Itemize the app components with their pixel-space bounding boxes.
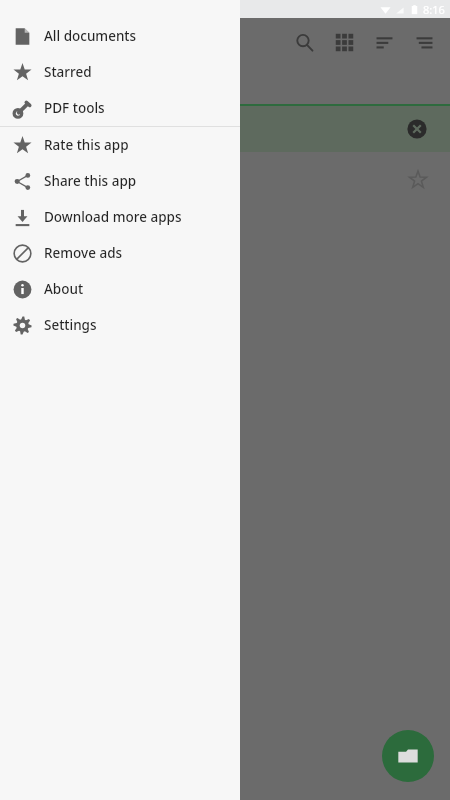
button[interactable]: Device storage xyxy=(203,66,247,106)
button[interactable]: Settings xyxy=(0,307,240,343)
staticText: Download more apps xyxy=(44,208,182,226)
button[interactable]: Download more apps xyxy=(0,199,240,235)
button[interactable]: Starred xyxy=(0,54,240,90)
button[interactable]: PDF tools xyxy=(0,90,240,126)
staticText: Starred xyxy=(44,63,92,81)
staticText: dia_medianoche.pdf xyxy=(14,170,153,190)
staticText: All documents xyxy=(44,27,137,45)
button[interactable]: New folder xyxy=(382,730,434,782)
button[interactable]: About xyxy=(0,271,240,307)
button[interactable]: Star xyxy=(400,162,436,198)
button[interactable]: Search xyxy=(284,22,324,62)
button[interactable]: Remove ads xyxy=(0,235,240,271)
staticText: About xyxy=(44,280,84,298)
button[interactable]: Grid view xyxy=(324,22,364,62)
staticText: PDF tools xyxy=(44,99,105,117)
button[interactable]: Rate this app xyxy=(0,127,240,163)
staticText: Remove ads xyxy=(44,244,123,262)
button[interactable]: Clear search xyxy=(400,112,434,146)
staticText: Search options xyxy=(14,119,119,139)
staticText: Rate this app xyxy=(44,136,129,154)
button[interactable]: Share this app xyxy=(0,163,240,199)
staticText: 8:16 xyxy=(423,2,445,17)
button[interactable]: Sort xyxy=(364,22,404,62)
button[interactable]: More options xyxy=(404,22,444,62)
staticText: Settings xyxy=(44,316,97,334)
staticText: Share this app xyxy=(44,172,137,190)
button[interactable]: All documents xyxy=(0,18,240,54)
